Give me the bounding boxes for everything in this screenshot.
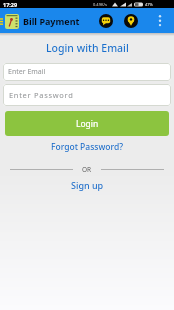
staticText: 17:29 [3,1,18,8]
staticText: 0.49K/s [93,2,107,7]
button[interactable] [99,14,113,28]
staticText: Login with Email [46,41,129,55]
button[interactable] [124,14,138,28]
button[interactable]: Forgot Password? [51,141,123,153]
staticText: Login [76,118,99,130]
button[interactable]: Enter Email [3,63,171,81]
staticText: Bill Payment [23,15,80,27]
button[interactable] [155,8,166,33]
staticText: 47% [145,2,153,7]
staticText: Forgot Password? [51,141,123,153]
staticText: Enter Password [9,90,74,100]
button[interactable]: Sign up [71,179,104,191]
staticText: Enter Email [8,67,46,77]
button[interactable]: Login [5,111,169,136]
button[interactable]: Enter Password [3,84,171,106]
staticText: Sign up [71,179,104,191]
staticText: OR [82,165,92,174]
